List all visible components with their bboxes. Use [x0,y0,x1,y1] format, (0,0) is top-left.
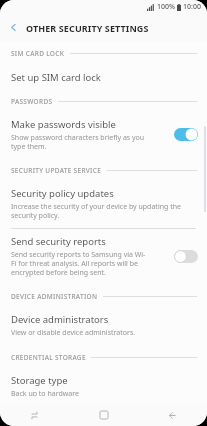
staticText: Increase the security of your device by … [11,202,181,220]
staticText: PASSWORDS [11,97,53,106]
button[interactable]: Set up SIM card lock [0,64,207,90]
button[interactable]: Back [138,404,207,426]
staticText: CREDENTIAL STORAGE [11,353,86,362]
staticText: View or disable device administrators. [11,328,136,338]
staticText: SECURITY UPDATE SERVICE [11,166,102,175]
staticText: Security policy updates [11,187,114,200]
button[interactable]: On [173,127,199,142]
staticText: 100% [157,2,175,12]
staticText: Send security reports to Samsung via Wi-… [11,250,146,277]
staticText: Device administrators [11,313,109,326]
button[interactable]: Home [69,404,138,426]
staticText: 10:00 [183,2,201,12]
button[interactable]: Make passwords visible [0,112,207,159]
staticText: Storage type [11,374,68,387]
staticText: Set up SIM card lock [11,71,101,84]
staticText: SIM CARD LOCK [11,49,65,58]
staticText: OTHER SECURITY SETTINGS [26,22,149,34]
button[interactable]: Back [0,13,26,42]
button[interactable]: Security policy updates [0,181,207,228]
staticText: DEVICE ADMINISTRATION [11,292,98,301]
staticText: Back up to hardware [11,389,79,396]
button[interactable]: Device administrators [0,307,207,346]
button[interactable]: Send security reports [0,229,207,285]
staticText: Send security reports [11,235,106,248]
button[interactable]: Off [173,249,199,264]
staticText: Show password characters briefly as you … [11,133,145,151]
staticText: Make passwords visible [11,118,116,131]
button[interactable]: Recents [0,404,69,426]
button[interactable]: Storage type [0,368,207,404]
